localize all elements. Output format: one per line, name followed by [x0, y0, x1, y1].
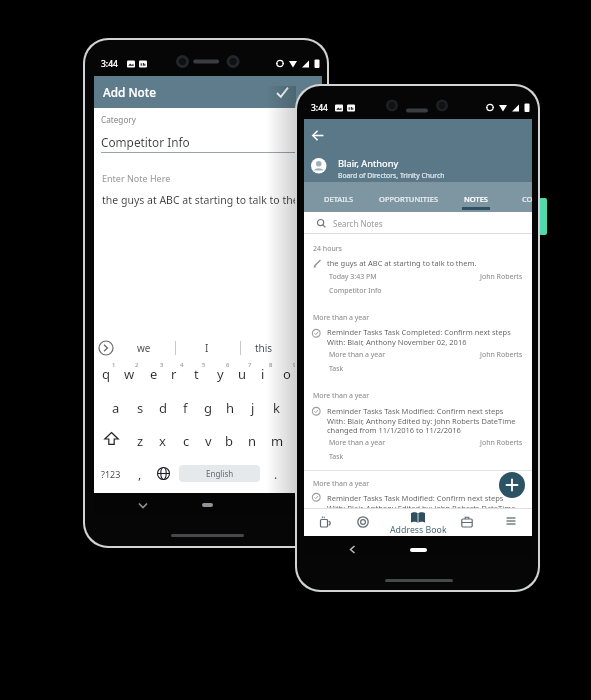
button[interactable] [304, 489, 532, 507]
button[interactable]: , [134, 464, 146, 484]
button[interactable]: . [270, 464, 282, 484]
button[interactable]: m [271, 431, 283, 451]
staticText: With: Blair, Anthony Edited by: John Rob… [327, 416, 516, 426]
button[interactable] [94, 76, 322, 108]
button[interactable] [97, 338, 115, 356]
button[interactable] [403, 508, 434, 535]
staticText: More than a year [313, 479, 370, 489]
button[interactable] [315, 512, 335, 532]
button[interactable]: this [251, 338, 277, 358]
staticText: Add Note [103, 84, 157, 100]
staticText: English [206, 468, 234, 479]
staticText: DETAILS [324, 194, 354, 204]
button[interactable] [501, 511, 521, 531]
staticText: CO [522, 194, 533, 204]
staticText: I [205, 341, 209, 355]
button[interactable]: y [214, 364, 226, 384]
button[interactable] [516, 186, 531, 211]
button[interactable]: p [303, 364, 315, 384]
button[interactable] [304, 324, 532, 376]
button[interactable]: g [202, 398, 214, 418]
staticText: f [183, 399, 188, 417]
staticText: 6 [226, 361, 230, 369]
staticText: the guys at ABC at starting to talk to t… [327, 258, 477, 268]
button[interactable]: c [180, 431, 192, 451]
staticText: r [171, 365, 177, 383]
button[interactable]: i [257, 364, 269, 384]
button[interactable] [94, 165, 322, 325]
button[interactable]: k [270, 398, 282, 418]
staticText: , [138, 466, 142, 482]
button[interactable]: f [179, 398, 191, 418]
button[interactable]: v [202, 431, 214, 451]
staticText: s [137, 399, 144, 417]
staticText: changed from 11/1/2016 to 11/2/2016 [327, 425, 461, 435]
staticText: 1 [112, 361, 116, 369]
staticText: v [205, 432, 212, 450]
button[interactable]: o [281, 364, 293, 384]
staticText: l [296, 399, 300, 417]
button[interactable]: u [236, 364, 248, 384]
button[interactable]: a [110, 398, 122, 418]
staticText: i [261, 365, 265, 383]
button[interactable]: ?123 [98, 464, 124, 484]
button[interactable] [94, 128, 322, 154]
button[interactable]: l [292, 398, 304, 418]
button[interactable]: d [157, 398, 169, 418]
button[interactable]: I [196, 338, 218, 358]
staticText: the guys at ABC at starting to talk to t… [102, 193, 299, 207]
staticText: Address Book [390, 524, 447, 536]
button[interactable] [304, 212, 532, 233]
staticText: 3:44 [311, 102, 328, 114]
button[interactable]: q [100, 364, 112, 384]
button[interactable] [304, 402, 532, 464]
staticText: With: Blair, Anthony November 02, 2016 [327, 337, 467, 347]
staticText: we [137, 341, 151, 355]
button[interactable] [154, 464, 173, 483]
staticText: Reminder Tasks Task Modified: Confirm ne… [327, 493, 504, 503]
staticText: More than a year [329, 350, 386, 360]
button[interactable] [368, 186, 444, 211]
staticText: e [150, 365, 158, 383]
button[interactable] [457, 512, 477, 532]
staticText: j [251, 399, 255, 417]
button[interactable]: we [131, 338, 157, 358]
button[interactable] [101, 429, 122, 448]
staticText: a [112, 399, 120, 417]
staticText: OPPORTUNITIES [379, 194, 439, 204]
staticText: 4 [180, 361, 184, 369]
button[interactable]: s [134, 398, 146, 418]
staticText: 5 [202, 361, 206, 369]
staticText: Today 3:43 PM [329, 272, 377, 282]
button[interactable]: h [224, 398, 236, 418]
button[interactable]: z [134, 431, 146, 451]
staticText: h [226, 399, 235, 417]
button[interactable]: n [246, 431, 258, 451]
staticText: b [225, 432, 233, 450]
button[interactable]: r [168, 364, 180, 384]
staticText: With: Blair, Anthony Edited by: John Rob… [327, 503, 516, 513]
button[interactable] [345, 541, 360, 558]
button[interactable]: t [190, 364, 202, 384]
button[interactable]: English [179, 465, 260, 482]
staticText: z [137, 432, 144, 450]
staticText: o [283, 365, 291, 383]
button[interactable] [353, 512, 373, 532]
staticText: 8 [269, 361, 273, 369]
button[interactable]: x [156, 431, 168, 451]
button[interactable] [499, 472, 525, 498]
button[interactable] [309, 127, 327, 145]
button[interactable] [304, 255, 532, 300]
staticText: u [238, 365, 247, 383]
button[interactable] [455, 186, 497, 211]
staticText: Enter Note Here [102, 172, 171, 184]
staticText: John Roberts [480, 438, 523, 448]
button[interactable]: w [123, 364, 135, 384]
button[interactable] [271, 81, 293, 102]
staticText: 2 [135, 361, 139, 369]
button[interactable]: e [148, 364, 160, 384]
button[interactable] [316, 186, 362, 211]
button[interactable]: j [247, 398, 259, 418]
button[interactable]: b [223, 431, 235, 451]
